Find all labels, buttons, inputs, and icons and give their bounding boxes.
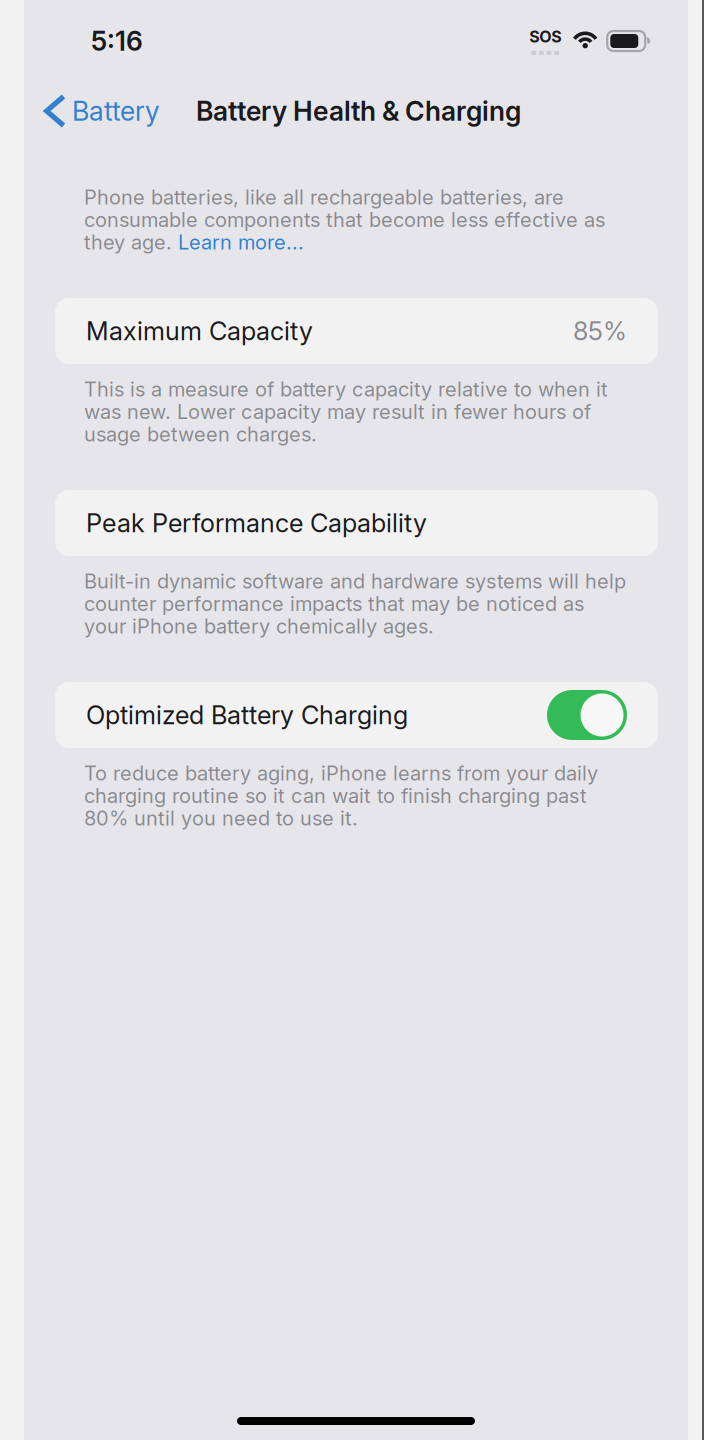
staticText: 85% bbox=[573, 316, 627, 346]
staticText: consumable components that become less e… bbox=[84, 208, 605, 232]
button[interactable]: Learn more... bbox=[178, 230, 304, 254]
staticText: Battery bbox=[72, 95, 160, 127]
staticText: 80% until you need to use it. bbox=[84, 806, 358, 830]
staticText: To reduce battery aging, iPhone learns f… bbox=[84, 761, 598, 785]
staticText: Built-in dynamic software and hardware s… bbox=[84, 569, 626, 593]
button[interactable]: Optimized Battery Charging bbox=[547, 690, 627, 740]
button[interactable]: Peak Performance Capability bbox=[55, 490, 658, 556]
staticText: Battery Health & Charging bbox=[196, 95, 521, 127]
staticText: charging routine so it can wait to finis… bbox=[84, 784, 587, 808]
staticText: Optimized Battery Charging bbox=[86, 700, 408, 730]
staticText: they age. bbox=[84, 230, 178, 254]
staticText: Phone batteries, like all rechargeable b… bbox=[84, 185, 564, 209]
staticText: SOS bbox=[529, 27, 561, 46]
staticText: Peak Performance Capability bbox=[86, 508, 427, 538]
staticText: 5:16 bbox=[91, 25, 143, 57]
staticText: This is a measure of battery capacity re… bbox=[84, 377, 608, 401]
staticText: was new. Lower capacity may result in fe… bbox=[84, 400, 591, 424]
staticText: Maximum Capacity bbox=[86, 316, 313, 346]
staticText: your iPhone battery chemically ages. bbox=[84, 614, 434, 638]
button[interactable]: Battery bbox=[24, 86, 168, 135]
staticText: counter performance impacts that may be … bbox=[84, 592, 584, 616]
staticText: usage between charges. bbox=[84, 422, 317, 446]
staticText: Learn more... bbox=[178, 230, 304, 254]
